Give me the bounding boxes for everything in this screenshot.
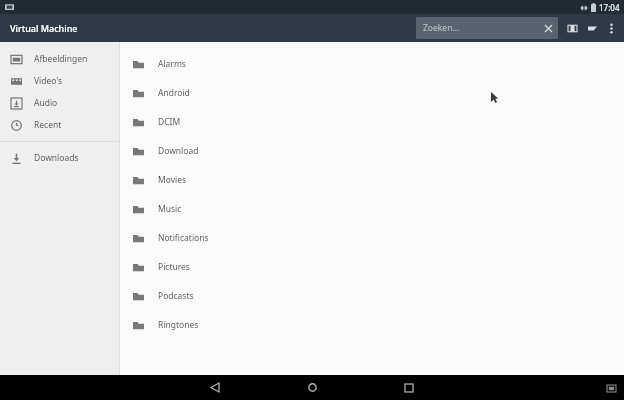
button[interactable]: Download xyxy=(120,136,624,165)
staticText: Downloads xyxy=(34,152,79,164)
button[interactable]: Zoeken... xyxy=(416,17,558,39)
staticText: Alarms xyxy=(158,58,186,70)
button[interactable]: Video's xyxy=(0,70,119,92)
button[interactable]: Ringtones xyxy=(120,310,624,339)
button[interactable]: Recent xyxy=(0,114,119,136)
staticText: Pictures xyxy=(158,261,190,273)
button[interactable]: Home xyxy=(299,375,325,400)
button[interactable]: More options xyxy=(602,19,620,37)
staticText: Android xyxy=(158,87,190,99)
button[interactable]: Audio xyxy=(0,92,119,114)
button[interactable]: Screenshot xyxy=(602,379,620,397)
staticText: Zoeken... xyxy=(423,22,460,34)
button[interactable]: Podcasts xyxy=(120,281,624,310)
button[interactable]: Grid view xyxy=(562,18,582,38)
button[interactable]: Music xyxy=(120,194,624,223)
staticText: Movies xyxy=(158,174,187,186)
staticText: Download xyxy=(158,145,199,157)
button[interactable]: Back xyxy=(202,375,228,400)
staticText: Virtual Machine xyxy=(10,22,78,34)
staticText: DCIM xyxy=(158,116,181,128)
button[interactable]: Sort xyxy=(582,18,602,38)
button[interactable]: Afbeeldingen xyxy=(0,48,119,70)
button[interactable]: Notifications xyxy=(120,223,624,252)
button[interactable]: DCIM xyxy=(120,107,624,136)
staticText: Recent xyxy=(34,119,62,131)
button[interactable]: Downloads xyxy=(0,147,119,169)
button[interactable]: Clear search xyxy=(538,18,558,38)
staticText: Video's xyxy=(34,75,63,87)
staticText: Audio xyxy=(34,97,58,109)
button[interactable]: Alarms xyxy=(120,49,624,78)
button[interactable]: Recent apps xyxy=(396,375,422,400)
staticText: Ringtones xyxy=(158,319,199,331)
staticText: Notifications xyxy=(158,232,209,244)
button[interactable]: Movies xyxy=(120,165,624,194)
button[interactable]: Android xyxy=(120,78,624,107)
staticText: Podcasts xyxy=(158,290,194,302)
button[interactable]: Pictures xyxy=(120,252,624,281)
staticText: Music xyxy=(158,203,182,215)
staticText: 17:04 xyxy=(599,2,620,13)
staticText: Afbeeldingen xyxy=(34,53,88,65)
